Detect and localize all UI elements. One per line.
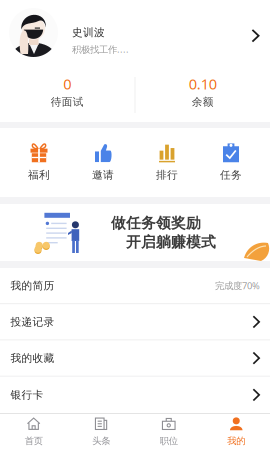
staticText: 我的收藏 — [10, 352, 54, 365]
staticText: 完成度70% — [215, 279, 260, 292]
button[interactable]: 首页 — [0, 413, 67, 450]
staticText: 待面试 — [51, 95, 84, 109]
staticText: 头条 — [92, 435, 110, 447]
button[interactable]: 任务 — [199, 128, 263, 197]
staticText: 职位 — [160, 435, 178, 447]
staticText: 我的简历 — [10, 279, 54, 292]
staticText: 积极找工作.... — [72, 43, 129, 55]
button[interactable]: 福利 — [7, 128, 71, 197]
staticText: 0 — [63, 74, 71, 93]
button[interactable]: 0.10 — [135, 68, 270, 122]
staticText: 余额 — [192, 95, 214, 109]
staticText: 排行 — [156, 168, 178, 181]
button[interactable]: 史训波 — [0, 0, 270, 68]
button[interactable]: 排行 — [135, 128, 199, 197]
staticText: 开启躺赚模式 — [126, 233, 216, 251]
staticText: 投递记录 — [10, 315, 54, 328]
button[interactable]: 职位 — [135, 413, 202, 450]
staticText: 任务 — [220, 168, 242, 181]
button[interactable]: 我的收藏 — [0, 340, 270, 377]
staticText: 我的 — [227, 435, 245, 447]
button[interactable]: 邀请 — [71, 128, 135, 197]
staticText: 0.10 — [189, 74, 217, 93]
staticText: 做任务领奖励 — [111, 214, 201, 232]
staticText: 邀请 — [92, 168, 114, 181]
staticText: 福利 — [28, 168, 50, 181]
button[interactable]: 我的简历 — [0, 268, 270, 304]
button[interactable]: 0 — [0, 68, 134, 122]
button[interactable]: 银行卡 — [0, 377, 270, 413]
button[interactable]: 头条 — [67, 413, 135, 450]
button[interactable]: 投递记录 — [0, 304, 270, 340]
button[interactable]: 做任务领奖励 — [0, 204, 270, 261]
staticText: 首页 — [25, 435, 43, 447]
staticText: 银行卡 — [10, 388, 43, 401]
staticText: 史训波 — [72, 26, 105, 39]
button[interactable]: 我的 — [202, 413, 270, 450]
